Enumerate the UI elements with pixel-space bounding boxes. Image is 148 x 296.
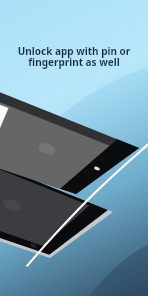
button[interactable] [0, 0, 148, 296]
